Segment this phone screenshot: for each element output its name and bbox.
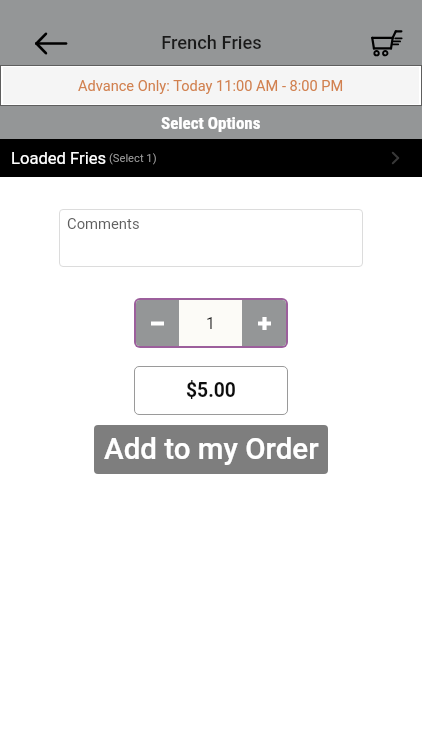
button[interactable]: Loaded Fries [0,139,422,177]
button[interactable]: Increase quantity [242,300,286,346]
staticText: French Fries [161,32,262,53]
button[interactable]: Add to my Order [94,425,328,474]
button[interactable]: Decrease quantity [136,300,179,346]
staticText: Add to my Order [104,432,319,467]
staticText: Comments [67,215,140,232]
staticText: $5.00 [186,379,236,402]
staticText: Select Options [161,113,261,133]
staticText: 1 [206,314,215,333]
staticText: Loaded Fries [11,149,107,168]
button[interactable]: Comments [59,209,363,267]
staticText: (Select 1) [109,152,157,165]
button[interactable]: Back [29,21,73,65]
button[interactable]: Cart [367,25,405,61]
staticText: Advance Only: Today 11:00 AM - 8:00 PM [78,77,344,94]
